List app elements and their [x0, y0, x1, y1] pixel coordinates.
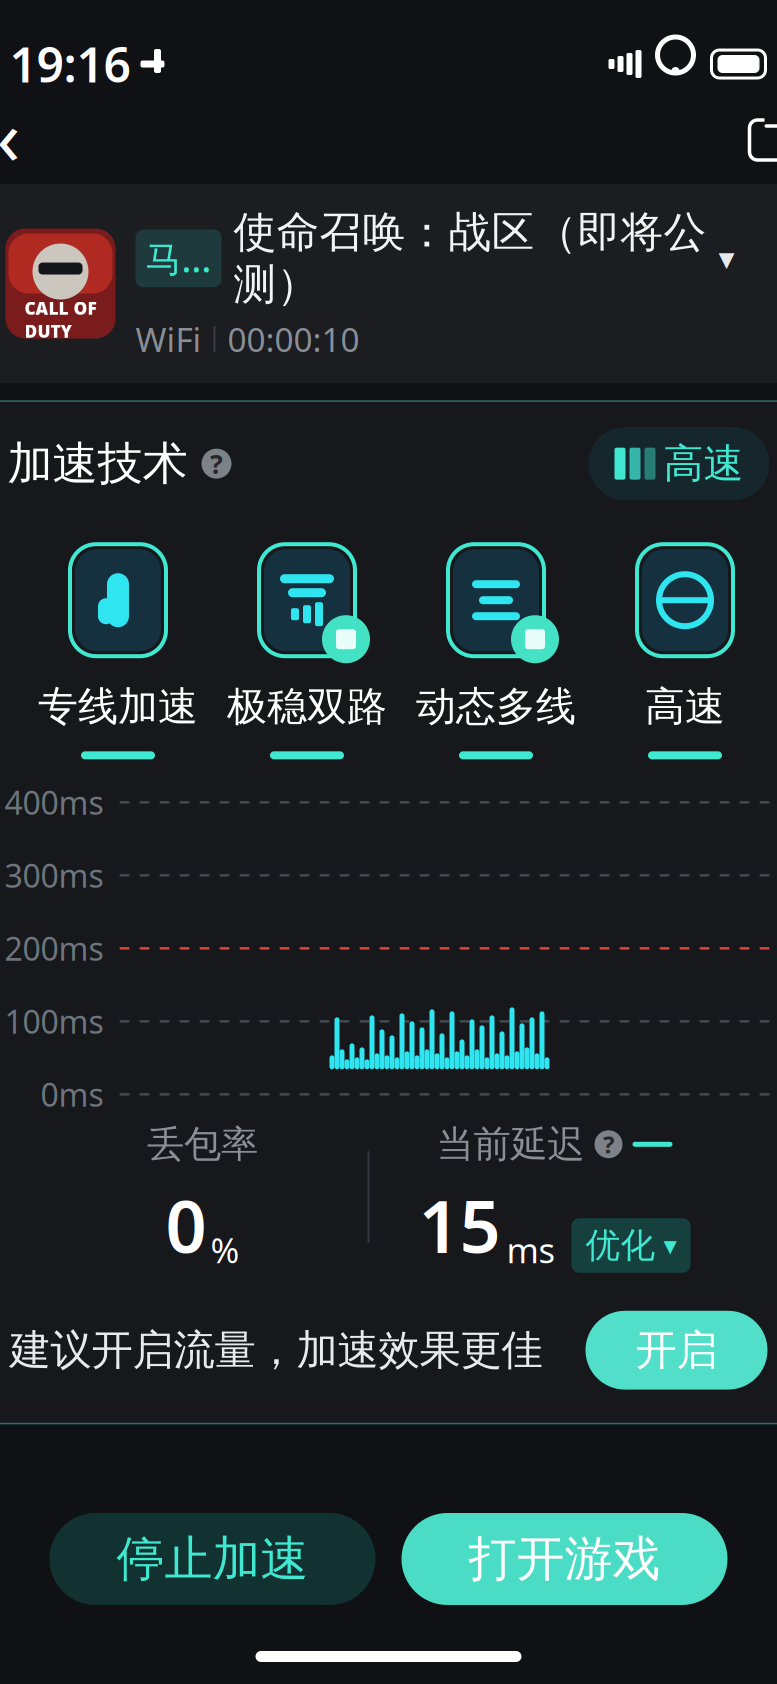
- staticText: 00:00:10: [227, 317, 359, 361]
- staticText: 加速技术: [7, 436, 187, 491]
- staticText: 专线加速: [38, 682, 198, 731]
- staticText: ?: [210, 446, 223, 481]
- staticText: WiFi: [135, 317, 201, 361]
- staticText: 打开游戏: [468, 1529, 660, 1588]
- staticText: 马...: [145, 234, 211, 282]
- staticText: 开启: [635, 1325, 717, 1376]
- staticText: 使命召唤：战区（即将公测）: [233, 206, 706, 311]
- staticText: 0: [165, 1177, 206, 1273]
- staticText: 100ms: [4, 1000, 103, 1043]
- staticText: 200ms: [4, 927, 103, 970]
- staticText: ms: [506, 1227, 555, 1273]
- button[interactable]: 极稳双路: [212, 534, 401, 759]
- staticText: ▾: [718, 240, 734, 276]
- staticText: 15: [418, 1177, 500, 1273]
- staticText: 动态多线: [416, 682, 576, 731]
- staticText: 极稳双路: [227, 682, 387, 731]
- staticText: 停止加速: [116, 1529, 308, 1588]
- button[interactable]: 高速: [588, 427, 769, 500]
- staticText: 高速: [663, 439, 743, 488]
- staticText: ?: [603, 1128, 614, 1160]
- staticText: 0ms: [40, 1073, 103, 1116]
- staticText: 建议开启流量，加速效果更佳: [9, 1325, 542, 1376]
- button[interactable]: 打开游戏: [401, 1513, 727, 1605]
- button[interactable]: Share: [737, 104, 777, 166]
- staticText: ‹: [0, 84, 20, 186]
- staticText: 当前延迟: [436, 1121, 584, 1167]
- staticText: 400ms: [4, 781, 103, 824]
- staticText: 高速: [645, 682, 725, 731]
- staticText: %: [210, 1227, 239, 1273]
- button[interactable]: 优化: [571, 1218, 690, 1273]
- button[interactable]: About acceleration technology: [201, 449, 231, 479]
- staticText: 丢包率: [147, 1121, 258, 1167]
- button[interactable]: CALL OF DUTY: [0, 184, 777, 383]
- button[interactable]: 停止加速: [49, 1513, 375, 1605]
- staticText: 19:16: [9, 32, 130, 96]
- button[interactable]: 开启: [585, 1311, 767, 1390]
- button[interactable]: 专线加速: [23, 534, 212, 759]
- staticText: CALL OF DUTY: [24, 296, 96, 342]
- button[interactable]: Back: [0, 104, 39, 166]
- button[interactable]: About latency: [594, 1130, 622, 1158]
- button[interactable]: 动态多线: [401, 534, 590, 759]
- staticText: 优化: [585, 1224, 655, 1267]
- staticText: 300ms: [4, 854, 103, 897]
- staticText: ▾: [663, 1230, 676, 1261]
- button[interactable]: 高速: [590, 534, 777, 759]
